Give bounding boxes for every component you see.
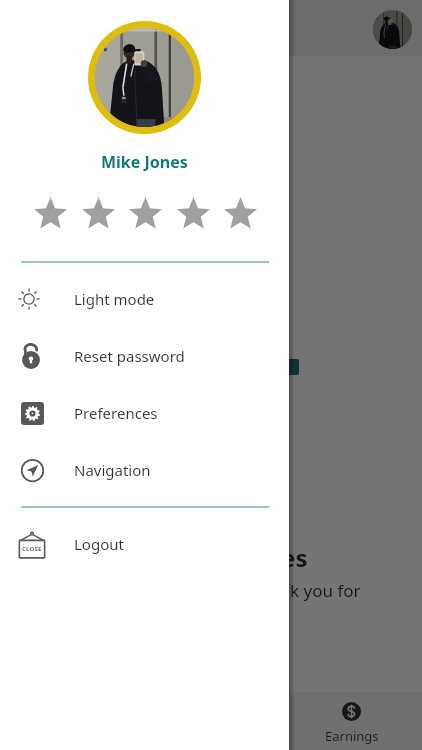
staticText: Earnings (325, 727, 379, 745)
button[interactable]: Light mode (0, 275, 289, 323)
button[interactable]: Reset password (0, 332, 289, 380)
staticText: Light mode (74, 289, 155, 309)
staticText: CLOSE (22, 545, 42, 553)
button[interactable]: Profile (373, 10, 412, 49)
button[interactable]: Preferences (0, 389, 289, 437)
staticText: Preferences (74, 403, 158, 423)
button[interactable]: Navigation (0, 446, 289, 494)
button[interactable]: Earnings (281, 698, 422, 745)
staticText: Thank you for (250, 579, 361, 602)
staticText: Logout (74, 534, 124, 554)
staticText: Reset password (74, 346, 185, 366)
button[interactable]: CLOSE (0, 520, 289, 568)
staticText: Mike Jones (101, 151, 188, 173)
staticText: Navigation (74, 460, 151, 480)
staticText: Rides (243, 541, 308, 574)
